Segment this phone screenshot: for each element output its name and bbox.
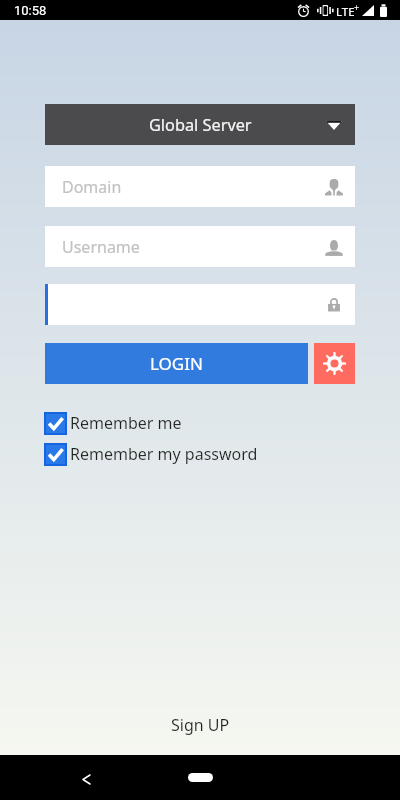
button[interactable] [45, 284, 355, 325]
staticText: Global Server [149, 114, 252, 136]
button[interactable]: Username [45, 226, 355, 267]
button[interactable]: Home [188, 773, 213, 782]
staticText: LTE [336, 4, 355, 20]
staticText: LOGIN [150, 352, 203, 375]
staticText: Remember me [70, 412, 182, 434]
staticText: + [354, 1, 360, 13]
staticText: Domain [62, 176, 122, 198]
staticText: Username [62, 236, 140, 258]
button[interactable]: Domain [45, 166, 355, 207]
staticText: 10:58 [14, 3, 47, 18]
staticText: Remember my password [70, 443, 258, 465]
button[interactable]: Back [70, 762, 102, 794]
button[interactable]: LOGIN [45, 343, 308, 384]
button[interactable]: Settings [314, 343, 355, 384]
staticText: Sign UP [171, 714, 230, 736]
button[interactable]: Sign UP [155, 707, 246, 743]
button[interactable]: Remember me [45, 412, 182, 434]
button[interactable]: Global Server [45, 104, 355, 145]
button[interactable]: Remember my password [45, 443, 258, 465]
